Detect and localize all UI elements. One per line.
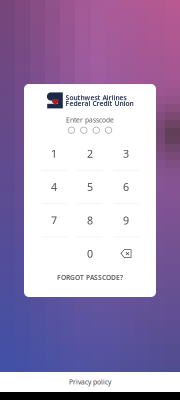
staticText: Southwest Airlines — [65, 93, 126, 102]
button[interactable]: 4 — [36, 171, 72, 203]
button[interactable]: Privacy policy — [0, 372, 180, 392]
button[interactable]: 5 — [72, 171, 108, 203]
staticText: 4 — [51, 180, 57, 194]
button[interactable]: 0 — [72, 237, 108, 270]
staticText: 9 — [123, 213, 129, 227]
button[interactable]: 8 — [72, 204, 108, 236]
staticText: Enter passcode — [66, 116, 114, 124]
staticText: Federal Credit Union — [65, 99, 133, 108]
staticText: 8 — [87, 213, 93, 227]
button[interactable]: Delete — [108, 237, 144, 270]
button[interactable]: FORGOT PASSCODE? — [24, 273, 156, 282]
staticText: 7 — [51, 213, 57, 227]
staticText: 1 — [51, 147, 57, 161]
staticText: 6 — [123, 180, 129, 194]
button[interactable]: 3 — [108, 137, 144, 170]
staticText: 0 — [87, 246, 93, 261]
button[interactable]: 7 — [36, 204, 72, 236]
staticText: 5 — [87, 180, 93, 194]
staticText: Privacy policy — [69, 378, 111, 386]
button[interactable]: 9 — [108, 204, 144, 236]
staticText: 3 — [123, 147, 129, 161]
staticText: FORGOT PASSCODE? — [57, 273, 123, 282]
button[interactable]: 2 — [72, 137, 108, 170]
button[interactable]: 1 — [36, 137, 72, 170]
button[interactable]: 6 — [108, 171, 144, 203]
staticText: 2 — [87, 147, 93, 161]
